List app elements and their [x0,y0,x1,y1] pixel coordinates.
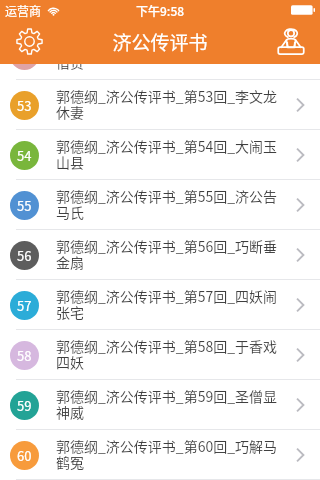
button[interactable]: 53 [0,80,320,130]
staticText: 57 [17,296,32,315]
staticText: 济公传评书 [112,28,208,56]
staticText: 郭德纲_济公传评书_第60回_巧解马鹤冤 [56,436,280,472]
staticText: 郭德纲_济公传评书_第58回_于香戏四妖 [56,336,280,372]
button[interactable]: 57 [0,280,320,330]
button[interactable]: 56 [0,230,320,280]
staticText: 郭德纲_济公传评书_第56回_巧断垂金扇 [56,236,280,272]
staticText: 郭德纲_济公传评书_第59回_圣僧显神威 [56,386,280,422]
staticText: 53 [17,96,32,115]
button[interactable]: 54 [0,130,320,180]
staticText: 55 [17,196,32,215]
staticText: 59 [17,396,32,415]
staticText: 52 [17,46,32,65]
staticText: 58 [17,346,32,365]
button[interactable]: 55 [0,180,320,230]
button[interactable]: 59 [0,380,320,430]
staticText: 郭德纲_济公传评书_第55回_济公告马氏 [56,186,280,222]
staticText: 56 [17,246,32,265]
staticText: 54 [17,146,32,165]
staticText: 郭德纲_济公传评书_第53回_李文龙休妻 [56,86,280,122]
button[interactable]: Settings [13,26,45,58]
button[interactable]: 52 [0,30,320,80]
staticText: 郭德纲_济公传评书_第52回_李国元 借贵 [56,36,280,72]
button[interactable]: Profile [274,26,306,58]
staticText: 郭德纲_济公传评书_第57回_四妖闹张宅 [56,286,280,322]
staticText: 60 [17,446,32,465]
staticText: 下午9:58 [136,2,185,19]
button[interactable]: 60 [0,430,320,480]
button[interactable]: 58 [0,330,320,380]
staticText: 运营商 [5,2,42,19]
staticText: 郭德纲_济公传评书_第54回_大闹玉山县 [56,136,280,172]
